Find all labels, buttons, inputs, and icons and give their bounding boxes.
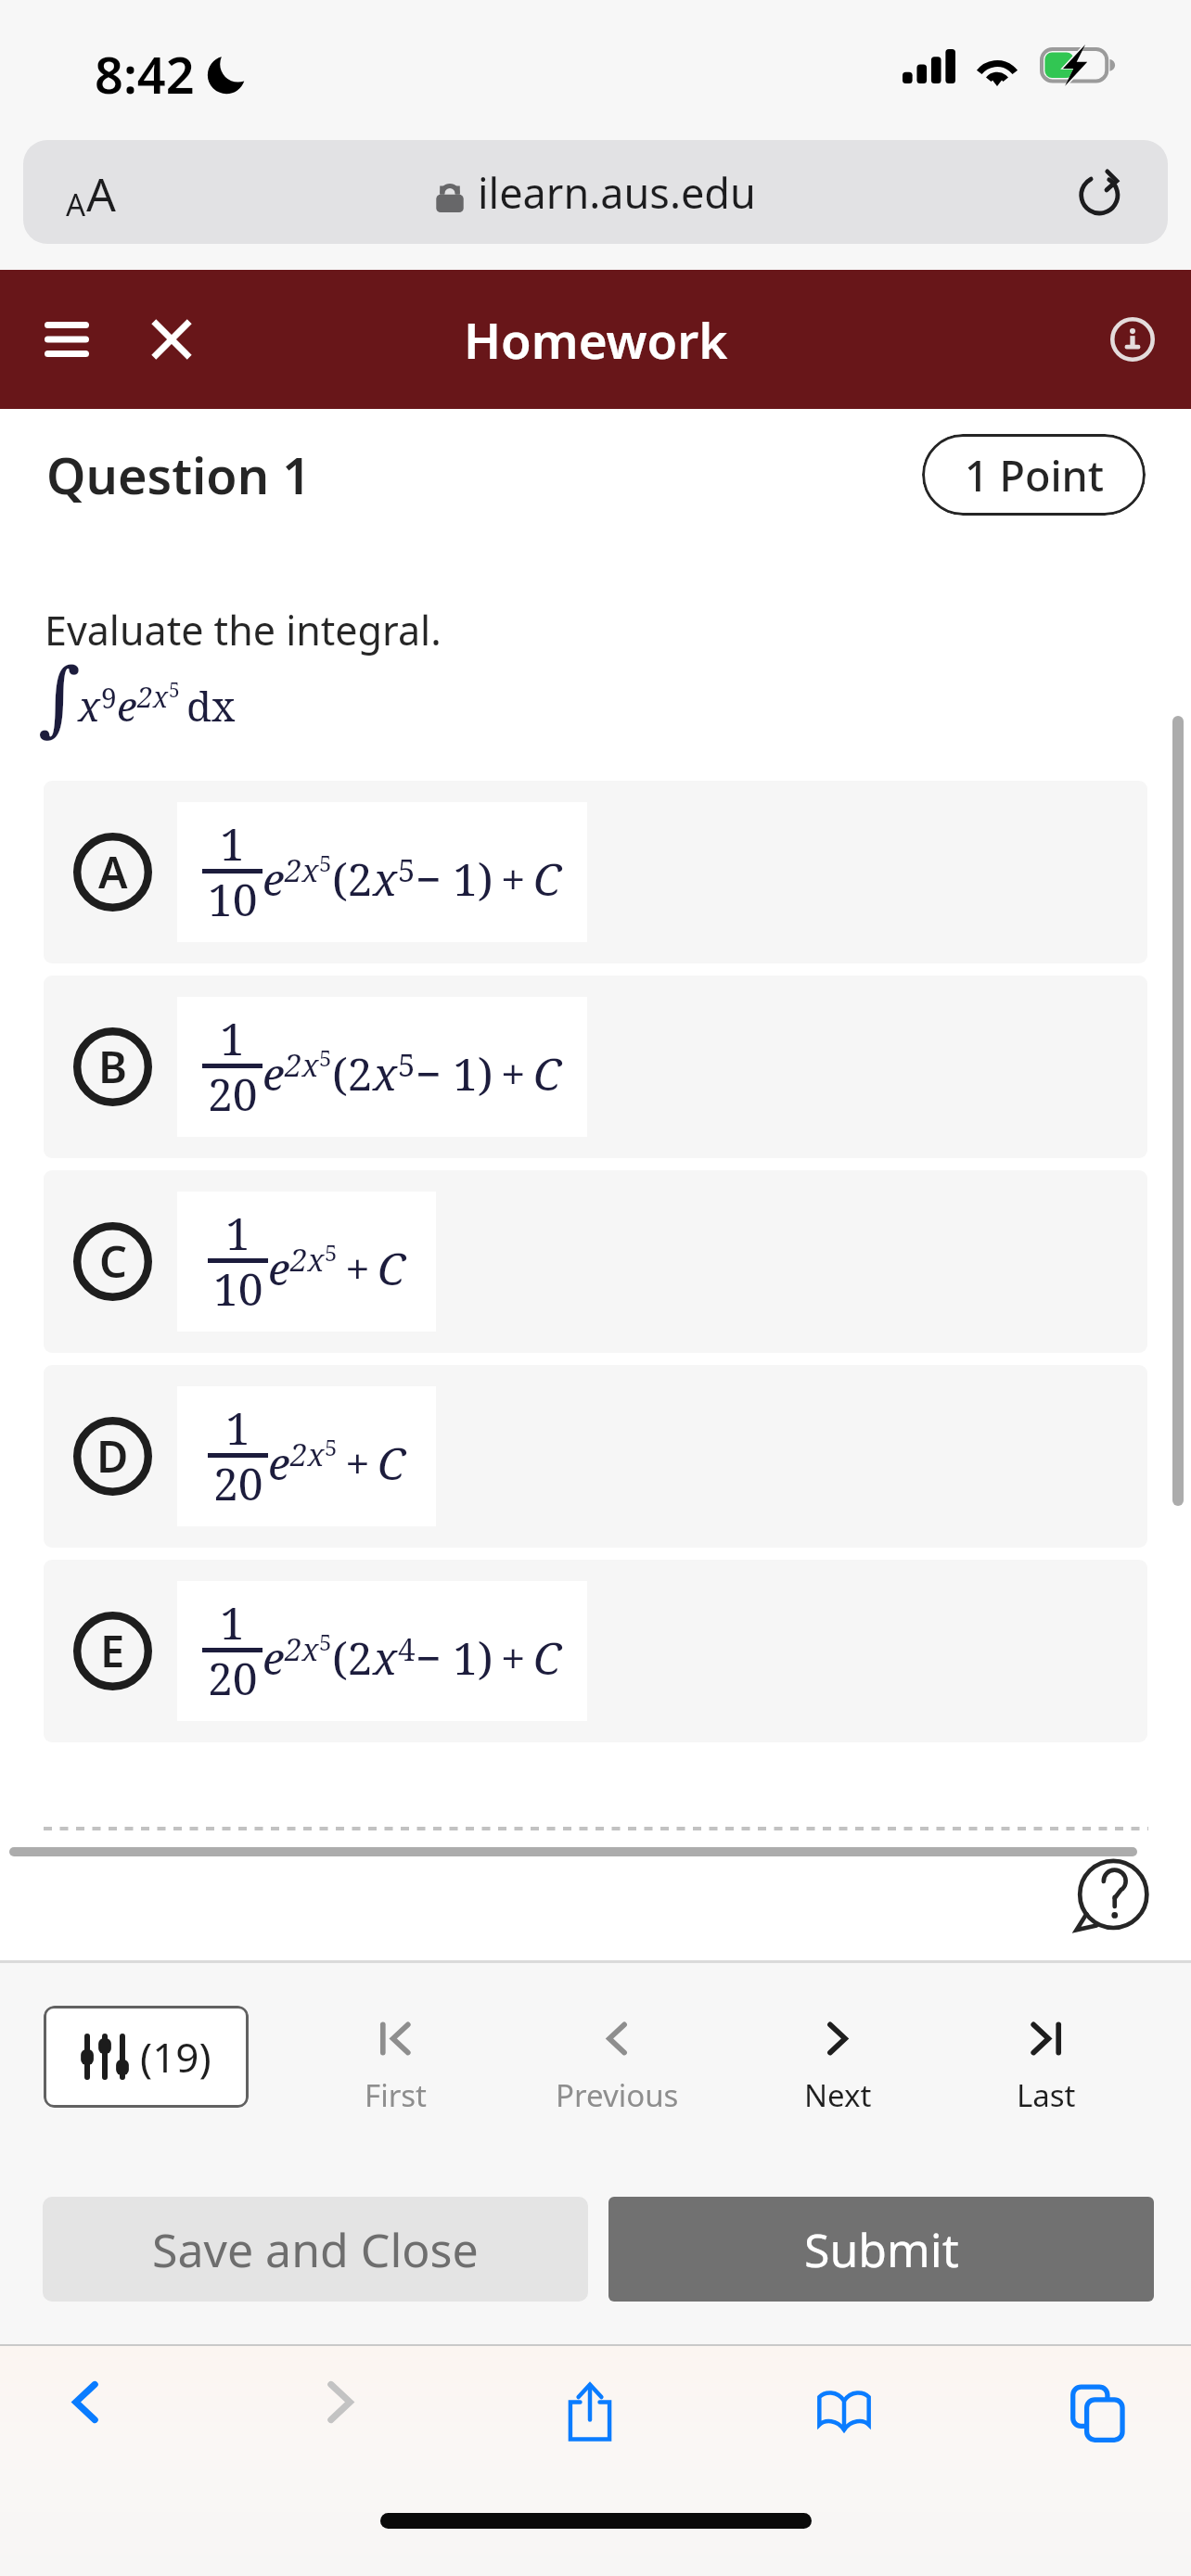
staticText: x <box>373 1043 398 1103</box>
staticText: 1 Point <box>965 447 1104 504</box>
staticText: e <box>263 848 285 909</box>
staticText: C <box>378 1238 406 1298</box>
staticText: − 1) + <box>416 1627 533 1688</box>
staticText: (2 <box>332 1043 373 1103</box>
button[interactable]: E <box>44 1560 1147 1742</box>
staticText: x <box>78 678 101 733</box>
button[interactable]: Share <box>534 2355 646 2467</box>
staticText: 5 <box>319 848 332 878</box>
button[interactable]: Menu <box>15 270 119 409</box>
button[interactable]: Bookmarks <box>788 2355 900 2467</box>
button[interactable]: C <box>44 1170 1147 1353</box>
staticText: Next <box>804 2074 872 2116</box>
staticText: e <box>268 1238 290 1298</box>
staticText: Save and Close <box>152 2218 479 2281</box>
staticText: − 1) + <box>416 1043 533 1103</box>
staticText: − 1) + <box>416 848 533 909</box>
staticText: 1 <box>220 1008 245 1068</box>
staticText: e <box>117 678 137 733</box>
button[interactable]: Help <box>1064 1856 1153 1945</box>
staticText: e <box>263 1627 285 1688</box>
staticText: 2x <box>285 1628 319 1670</box>
staticText: A <box>66 184 86 225</box>
staticText: x <box>373 848 398 909</box>
staticText: e <box>263 1043 285 1103</box>
staticText: C <box>533 848 562 909</box>
staticText: (19) <box>140 2029 211 2085</box>
staticText: 5 <box>169 677 180 704</box>
button[interactable]: B <box>44 976 1147 1158</box>
button[interactable]: First <box>302 2021 488 2116</box>
staticText: 20 <box>213 1453 263 1513</box>
staticText: 2x <box>290 1239 325 1281</box>
staticText: 10 <box>208 869 258 929</box>
staticText: 1 <box>225 1397 250 1458</box>
staticText: e <box>268 1433 290 1493</box>
staticText: 5 <box>319 1042 332 1073</box>
staticText: D <box>96 1426 129 1486</box>
staticText: (2 <box>332 848 373 909</box>
staticText: Last <box>1017 2074 1076 2116</box>
staticText: 1 <box>220 813 245 874</box>
button[interactable]: Reload <box>1066 157 1136 227</box>
button[interactable]: Previous <box>524 2021 710 2116</box>
staticText: ∫ <box>38 650 75 745</box>
button[interactable]: Save and Close <box>43 2197 588 2302</box>
button[interactable]: A <box>44 781 1147 963</box>
staticText: B <box>98 1037 127 1096</box>
staticText: 20 <box>208 1648 258 1708</box>
staticText: 5 <box>325 1432 338 1462</box>
staticText: C <box>99 1231 127 1291</box>
staticText: 1 <box>220 1592 245 1652</box>
staticText: 2x <box>285 1044 319 1086</box>
staticText: dx <box>186 678 236 733</box>
staticText: C <box>533 1627 562 1688</box>
staticText: Submit <box>804 2218 959 2281</box>
button[interactable]: Forward <box>285 2355 396 2467</box>
staticText: 20 <box>208 1064 258 1124</box>
button[interactable]: Close <box>119 270 224 409</box>
staticText: Evaluate the integral. <box>45 603 442 657</box>
staticText: A <box>98 842 128 901</box>
staticText: Homework <box>464 306 728 373</box>
button[interactable]: 1 Point <box>922 434 1146 516</box>
staticText: (2 <box>332 1627 373 1688</box>
staticText: 4 <box>398 1628 416 1670</box>
button[interactable]: Tabs <box>1043 2355 1154 2467</box>
staticText: 9 <box>101 679 117 717</box>
button[interactable]: Next <box>745 2021 930 2116</box>
staticText: C <box>378 1433 406 1493</box>
staticText: 5 <box>398 1044 416 1086</box>
button[interactable]: Back <box>30 2355 141 2467</box>
staticText: 2x <box>290 1434 325 1475</box>
button[interactable]: (19) <box>44 2006 249 2108</box>
staticText: 10 <box>213 1258 263 1319</box>
staticText: 5 <box>325 1237 338 1268</box>
staticText: Question 1 <box>46 440 312 509</box>
staticText: + <box>338 1433 378 1493</box>
staticText: x <box>373 1627 398 1688</box>
staticText: E <box>100 1621 125 1680</box>
button[interactable]: Submit <box>608 2197 1154 2302</box>
staticText: + <box>338 1238 378 1298</box>
staticText: 5 <box>319 1626 332 1657</box>
staticText: 8:42 <box>95 40 195 108</box>
staticText: C <box>533 1043 562 1103</box>
staticText: 1 <box>225 1203 250 1263</box>
button[interactable]: Last <box>954 2021 1139 2116</box>
staticText: 5 <box>398 849 416 891</box>
staticText: First <box>365 2074 427 2116</box>
staticText: 2x <box>137 678 169 716</box>
staticText: Previous <box>556 2074 679 2116</box>
button[interactable]: Info <box>1095 302 1170 376</box>
staticText: ilearn.aus.edu <box>478 164 756 221</box>
button[interactable]: A <box>23 140 1168 244</box>
staticText: 2x <box>285 849 319 891</box>
staticText: A <box>86 162 116 225</box>
button[interactable]: D <box>44 1365 1147 1548</box>
